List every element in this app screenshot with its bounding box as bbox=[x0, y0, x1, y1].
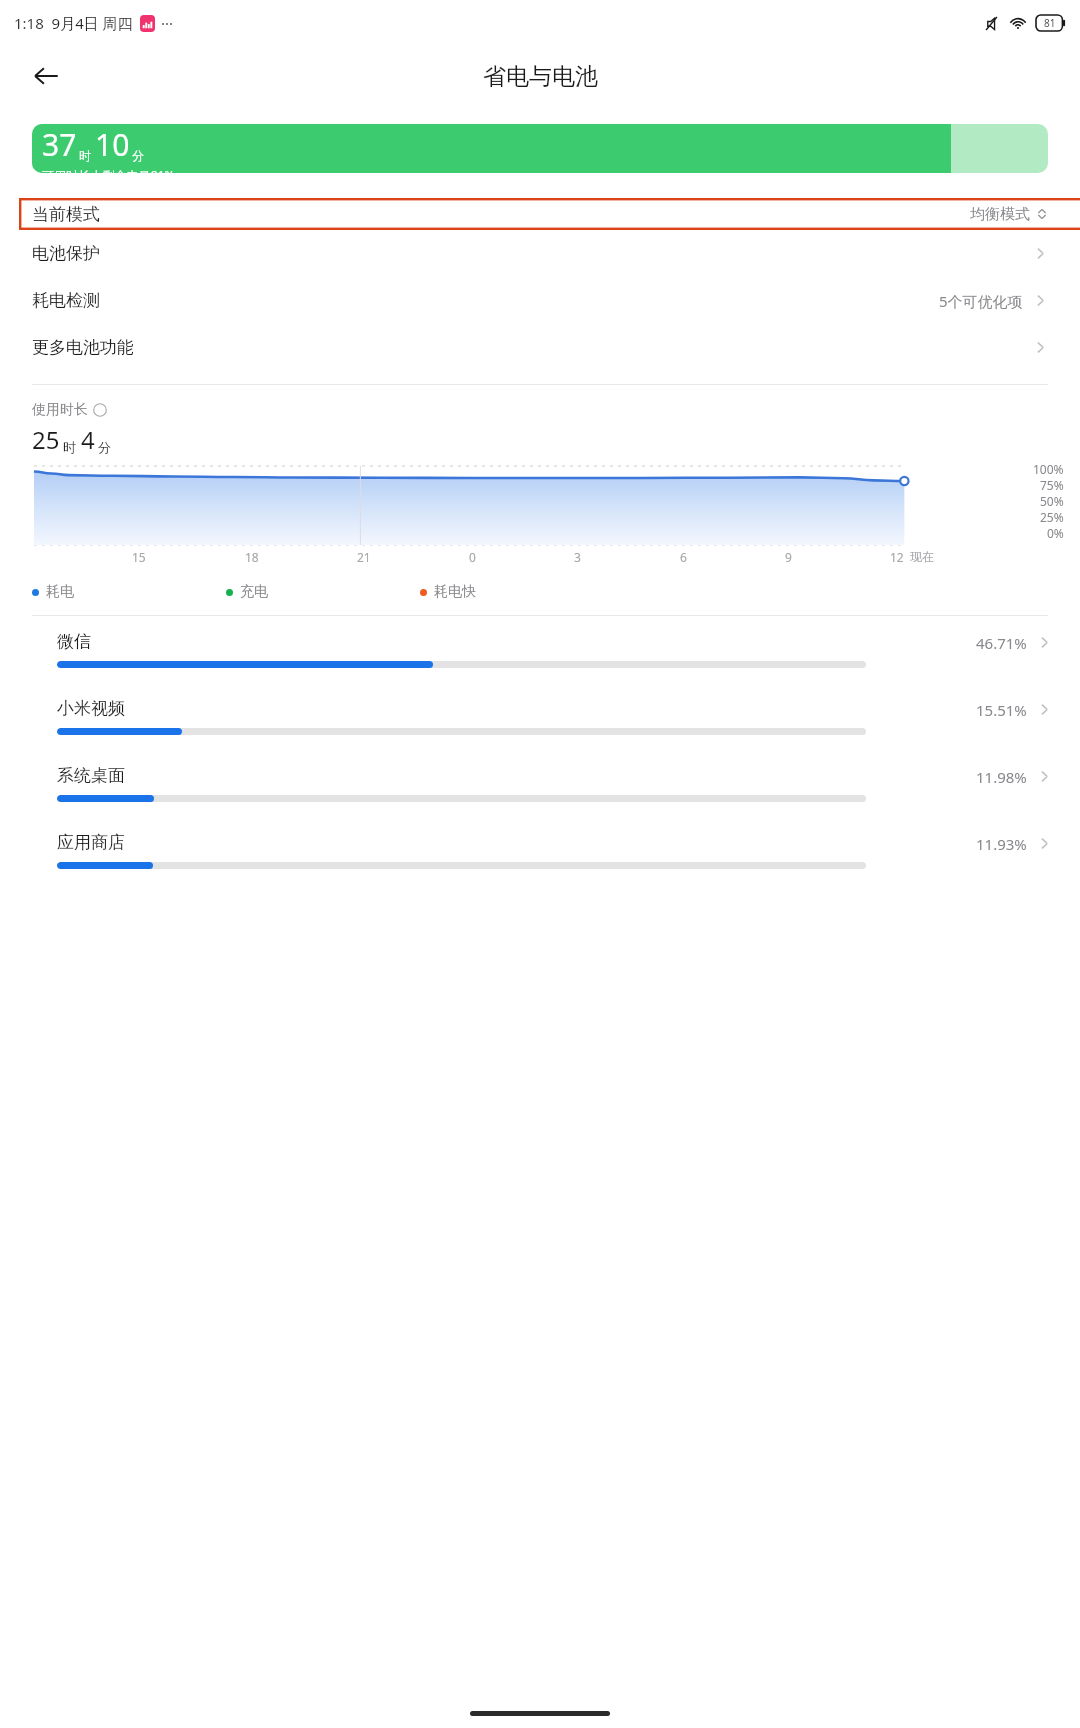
staticText: 21 bbox=[357, 549, 371, 565]
staticText: 0% bbox=[1047, 525, 1064, 540]
staticText: 50% bbox=[1040, 493, 1064, 509]
staticText: 耗电快 bbox=[434, 583, 476, 601]
staticText: 使用时长 bbox=[32, 401, 88, 419]
staticText: 微信 bbox=[57, 631, 91, 652]
staticText: 分 bbox=[132, 148, 144, 163]
staticText: 18 bbox=[245, 549, 259, 565]
button[interactable]: 应用商店 bbox=[0, 817, 1080, 884]
staticText: 0 bbox=[469, 549, 476, 565]
button[interactable]: 当前模式 bbox=[0, 198, 1080, 230]
staticText: 充电 bbox=[240, 583, 268, 601]
staticText: 25 bbox=[32, 423, 60, 456]
staticText: 11.98% bbox=[976, 767, 1027, 787]
staticText: 37 bbox=[42, 124, 77, 165]
button[interactable]: 返回 bbox=[20, 50, 72, 102]
staticText: 15 bbox=[132, 549, 146, 565]
staticText: 6 bbox=[680, 549, 687, 565]
staticText: 小米视频 bbox=[57, 698, 125, 719]
staticText: 时 bbox=[79, 148, 91, 163]
staticText: 分 bbox=[98, 439, 111, 455]
staticText: 耗电检测 bbox=[32, 290, 100, 311]
staticText: 均衡模式 bbox=[970, 205, 1030, 224]
staticText: 可用时长 | 剩余电量81% bbox=[42, 167, 175, 173]
staticText: 46.71% bbox=[976, 633, 1027, 653]
staticText: 81 bbox=[1044, 16, 1056, 30]
staticText: 时 bbox=[63, 439, 76, 455]
staticText: 省电与电池 bbox=[483, 62, 598, 91]
staticText: 更多电池功能 bbox=[32, 337, 134, 358]
staticText: 15.51% bbox=[976, 700, 1027, 720]
staticText: 4 bbox=[81, 423, 95, 456]
button[interactable]: 系统桌面 bbox=[0, 750, 1080, 817]
staticText: 现在 bbox=[910, 549, 934, 564]
staticText: 25% bbox=[1040, 509, 1064, 525]
button[interactable]: 37 bbox=[32, 124, 1048, 173]
staticText: 11.93% bbox=[976, 834, 1027, 854]
button[interactable]: 更多电池功能 bbox=[0, 324, 1080, 371]
staticText: 当前模式 bbox=[32, 204, 100, 225]
staticText: 10 bbox=[95, 124, 130, 165]
button[interactable]: 小米视频 bbox=[0, 683, 1080, 750]
staticText: 100% bbox=[1033, 461, 1064, 477]
staticText: 5个可优化项 bbox=[939, 291, 1023, 311]
button[interactable]: 微信 bbox=[0, 616, 1080, 683]
staticText: ··· bbox=[161, 13, 174, 33]
staticText: 系统桌面 bbox=[57, 765, 125, 786]
staticText: 应用商店 bbox=[57, 832, 125, 853]
button[interactable]: 耗电检测 bbox=[0, 277, 1080, 324]
staticText: 3 bbox=[574, 549, 581, 565]
staticText: 1:18 9月4日 周四 bbox=[14, 13, 133, 33]
staticText: 12 bbox=[890, 549, 904, 565]
staticText: 电池保护 bbox=[32, 243, 100, 264]
button[interactable]: 电池保护 bbox=[0, 230, 1080, 277]
staticText: 9 bbox=[785, 549, 792, 565]
staticText: 75% bbox=[1040, 477, 1064, 493]
staticText: 耗电 bbox=[46, 583, 74, 601]
